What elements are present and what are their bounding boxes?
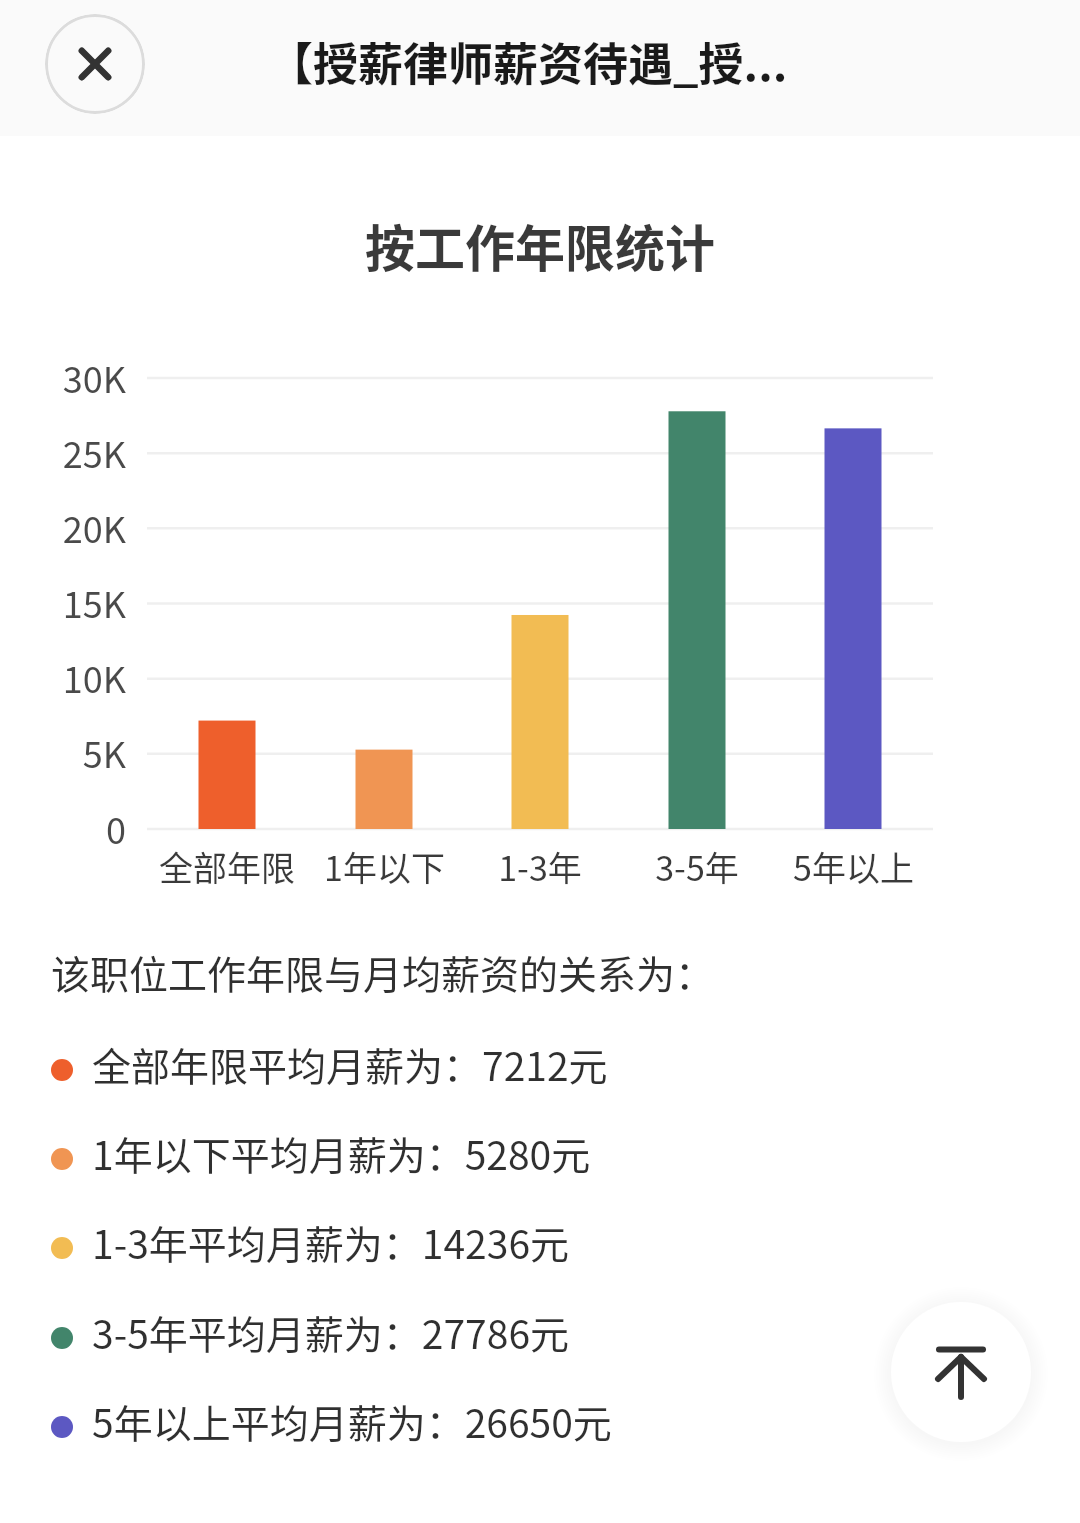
- staticText: 1-3年: [498, 842, 582, 891]
- staticText: 3-5年: [655, 842, 739, 891]
- button[interactable]: Close: [45, 14, 145, 114]
- staticText: 【授薪律师薪资待遇_授...: [268, 29, 788, 94]
- staticText: 5K: [82, 726, 126, 778]
- staticText: 全部年限平均月薪为：7212元: [92, 1036, 608, 1092]
- staticText: 3-5年平均月薪为：27786元: [92, 1304, 570, 1360]
- staticText: 5年以上平均月薪为：26650元: [92, 1393, 612, 1449]
- staticText: 5年以上: [793, 842, 914, 891]
- staticText: 全部年限: [159, 842, 295, 891]
- staticText: 该职位工作年限与月均薪资的关系为：: [51, 944, 715, 1000]
- staticText: 按工作年限统计: [365, 209, 715, 275]
- staticText: 10K: [62, 651, 126, 703]
- staticText: 30K: [62, 351, 126, 403]
- staticText: 0: [106, 802, 126, 854]
- staticText: 15K: [62, 576, 126, 628]
- staticText: 1年以下: [324, 842, 445, 891]
- staticText: 20K: [62, 501, 126, 553]
- staticText: 1-3年平均月薪为：14236元: [92, 1214, 570, 1270]
- button[interactable]: Back to top: [891, 1302, 1031, 1442]
- staticText: 1年以下平均月薪为：5280元: [92, 1125, 591, 1181]
- staticText: 25K: [62, 426, 126, 478]
